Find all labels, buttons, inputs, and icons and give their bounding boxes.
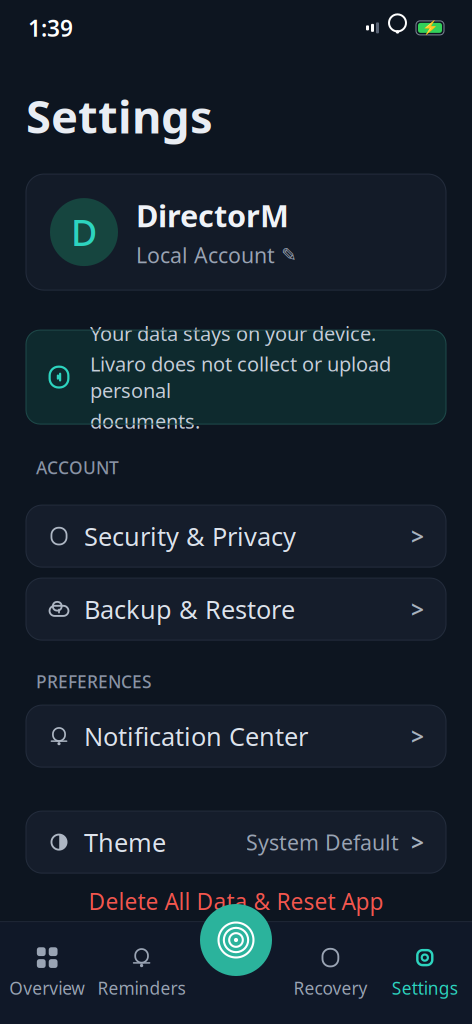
staticText: DirectorM bbox=[136, 195, 289, 236]
staticText: D bbox=[71, 208, 97, 256]
staticText: ⚡ bbox=[421, 20, 438, 35]
staticText: Your data stays on your device. bbox=[90, 320, 376, 347]
staticText: Security & Privacy bbox=[84, 519, 296, 553]
button[interactable]: Settings bbox=[378, 936, 472, 1010]
button[interactable]: Recovery bbox=[283, 936, 378, 1010]
staticText: Theme bbox=[84, 825, 166, 859]
staticText: System Default bbox=[246, 828, 399, 856]
staticText: > bbox=[411, 827, 424, 857]
staticText: Delete All Data & Reset App bbox=[88, 886, 383, 916]
staticText: Reminders bbox=[98, 977, 186, 1000]
button[interactable]: Overview bbox=[0, 936, 94, 1010]
staticText: Overview bbox=[9, 977, 85, 1000]
staticText: > bbox=[411, 721, 424, 751]
staticText: Livaro does not collect or upload person… bbox=[90, 350, 391, 404]
staticText: > bbox=[411, 521, 424, 551]
button[interactable]: Notification Center bbox=[26, 705, 446, 767]
staticText: Notification Center bbox=[84, 719, 308, 753]
staticText: Settings bbox=[392, 977, 458, 1000]
staticText: Settings bbox=[26, 86, 213, 146]
staticText: ✎ bbox=[281, 244, 297, 266]
button[interactable]: D bbox=[26, 174, 446, 290]
staticText: 1:39 bbox=[28, 13, 73, 43]
staticText: documents. bbox=[90, 408, 200, 434]
button[interactable]: Security & Privacy bbox=[26, 505, 446, 567]
staticText: Local Account bbox=[136, 241, 275, 269]
button[interactable]: Theme bbox=[26, 811, 446, 873]
button[interactable]: Scan fingerprint bbox=[200, 904, 272, 976]
staticText: PREFERENCES bbox=[36, 670, 152, 693]
staticText: > bbox=[411, 594, 424, 624]
button[interactable]: Backup & Restore bbox=[26, 578, 446, 640]
button[interactable]: Delete All Data & Reset App bbox=[0, 881, 472, 921]
button[interactable]: Reminders bbox=[94, 936, 189, 1010]
staticText: Backup & Restore bbox=[84, 592, 295, 626]
staticText: Recovery bbox=[293, 977, 367, 1000]
staticText: ACCOUNT bbox=[36, 456, 119, 479]
